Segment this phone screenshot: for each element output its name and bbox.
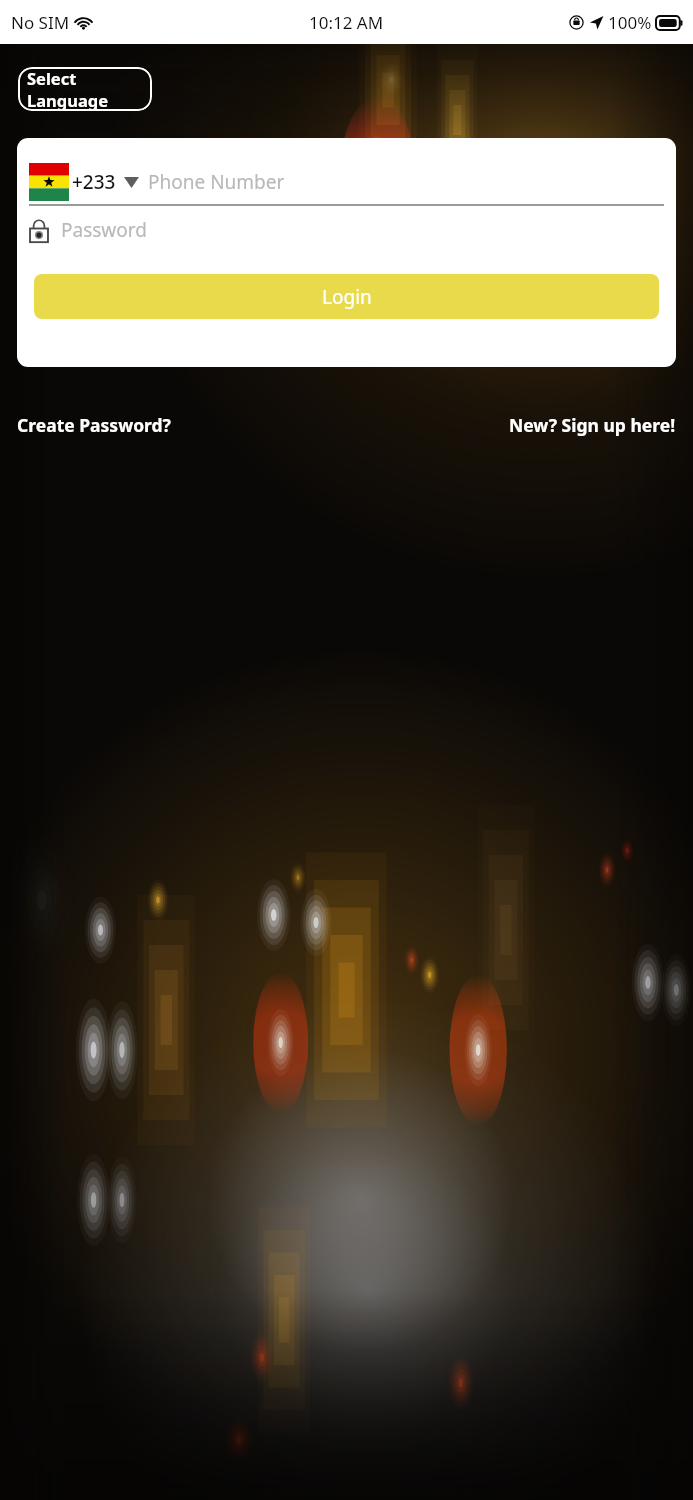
button[interactable]: +233 xyxy=(29,163,664,201)
staticText: 100% xyxy=(608,11,652,34)
button[interactable]: New? Sign up here! xyxy=(509,409,676,441)
button[interactable]: Password xyxy=(29,215,664,245)
button[interactable]: Create Password? xyxy=(17,409,171,441)
staticText: Select Language xyxy=(27,67,143,111)
staticText: 10:12 AM xyxy=(309,11,384,34)
staticText: Password xyxy=(61,217,147,243)
staticText: Create Password? xyxy=(17,413,171,437)
staticText: +233 xyxy=(72,169,116,195)
staticText: Login xyxy=(322,284,372,310)
staticText: No SIM xyxy=(11,11,70,34)
button[interactable]: Select Language xyxy=(18,67,152,111)
staticText: New? Sign up here! xyxy=(509,413,676,437)
staticText: Phone Number xyxy=(148,169,285,195)
button[interactable]: Login xyxy=(34,274,659,319)
